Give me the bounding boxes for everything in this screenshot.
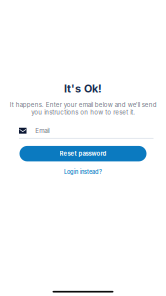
staticText: Reset password: [59, 150, 106, 157]
staticText: It's Ok!: [64, 82, 102, 95]
button[interactable]: Reset password: [19, 146, 146, 161]
staticText: Login instead?: [64, 168, 102, 175]
button[interactable]: Login instead?: [64, 168, 102, 175]
staticText: Email: [35, 127, 49, 134]
staticText: It happens. Enter your email below and w…: [9, 101, 156, 116]
